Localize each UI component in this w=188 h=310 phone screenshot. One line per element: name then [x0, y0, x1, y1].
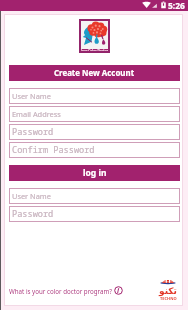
staticText: Your Color Doctor — [80, 49, 109, 53]
staticText: Email Address — [12, 109, 61, 119]
button[interactable]: User Name — [9, 88, 180, 104]
button[interactable]: log in — [9, 165, 180, 181]
staticText: User Name — [12, 191, 51, 201]
button[interactable]: Password — [9, 206, 180, 222]
button[interactable]: Password — [9, 124, 180, 140]
button[interactable]: Email Address — [9, 106, 180, 122]
staticText: 5:26 — [168, 0, 185, 11]
button[interactable]: User Name — [9, 188, 180, 204]
staticText: TECHNO — [160, 296, 177, 301]
staticText: Password — [12, 208, 54, 220]
staticText: What is your color doctor program? — [9, 287, 112, 295]
staticText: Password — [12, 126, 54, 138]
staticText: i — [117, 286, 120, 295]
staticText: Confirm Password — [12, 144, 95, 156]
button[interactable]: Create New Account — [9, 65, 180, 81]
staticText: User Name — [12, 91, 51, 101]
button[interactable]: Confirm Password — [9, 142, 180, 158]
staticText: log in — [83, 167, 107, 179]
staticText: تكنو — [159, 286, 177, 296]
button[interactable]: Info — [114, 286, 123, 295]
staticText: Create New Account — [54, 68, 135, 79]
